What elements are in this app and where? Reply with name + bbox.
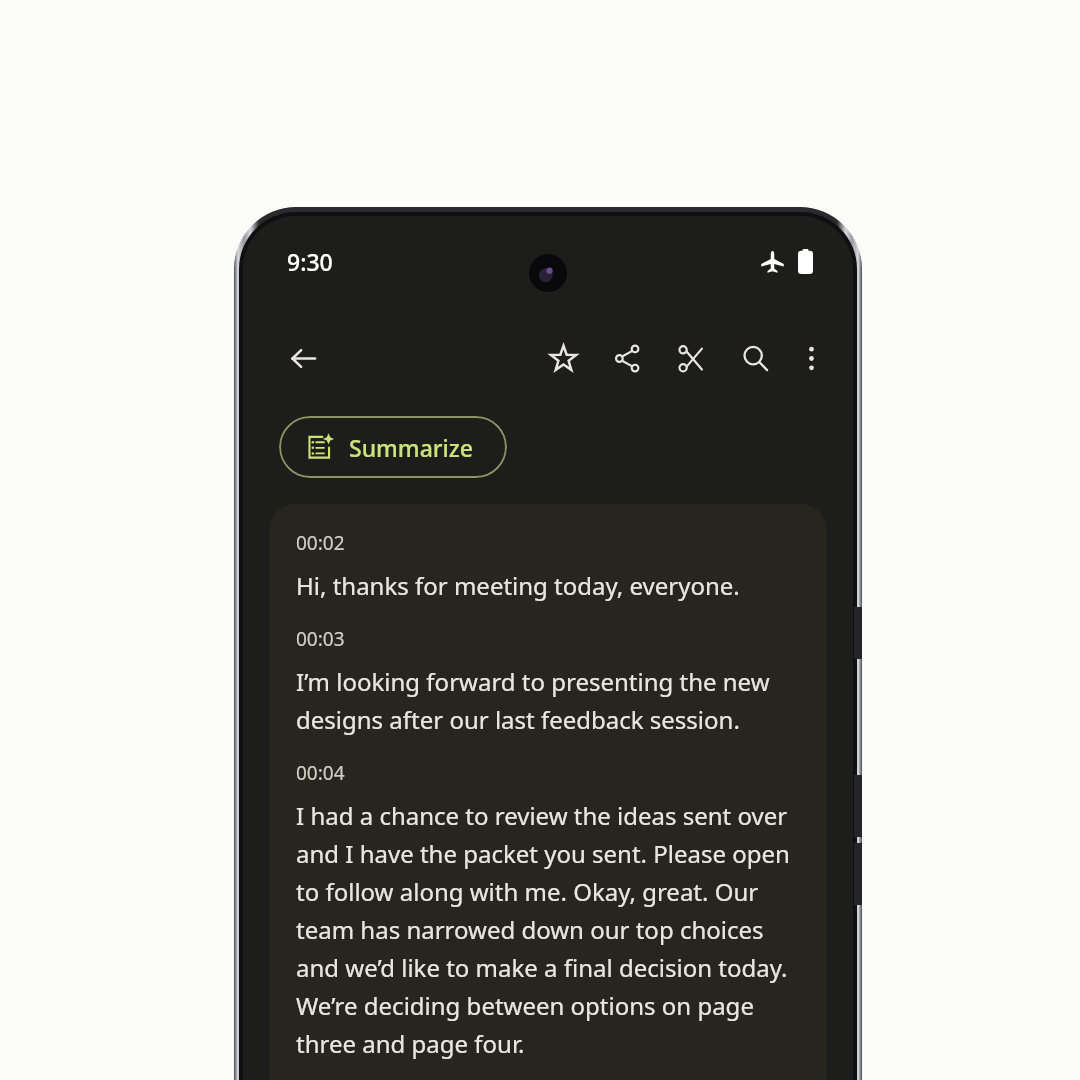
button[interactable]: Back: [281, 336, 325, 380]
staticText: Summarize: [349, 432, 473, 463]
button[interactable]: Clip: [669, 336, 713, 380]
button[interactable]: More options: [789, 336, 833, 380]
button[interactable]: Summarize: [279, 416, 507, 478]
button[interactable]: Share: [605, 336, 649, 380]
staticText: 9:30: [287, 246, 333, 277]
button[interactable]: Search: [733, 336, 777, 380]
staticText: 00:04: [296, 760, 345, 786]
staticText: 00:02: [296, 530, 345, 556]
staticText: Hi, thanks for meeting today, everyone.: [296, 569, 740, 602]
button[interactable]: 00:02: [269, 504, 827, 1080]
staticText: I’m looking forward to presenting the ne…: [296, 665, 809, 736]
button[interactable]: Star: [541, 336, 585, 380]
staticText: I had a chance to review the ideas sent …: [296, 799, 809, 1060]
staticText: 00:03: [296, 626, 345, 652]
